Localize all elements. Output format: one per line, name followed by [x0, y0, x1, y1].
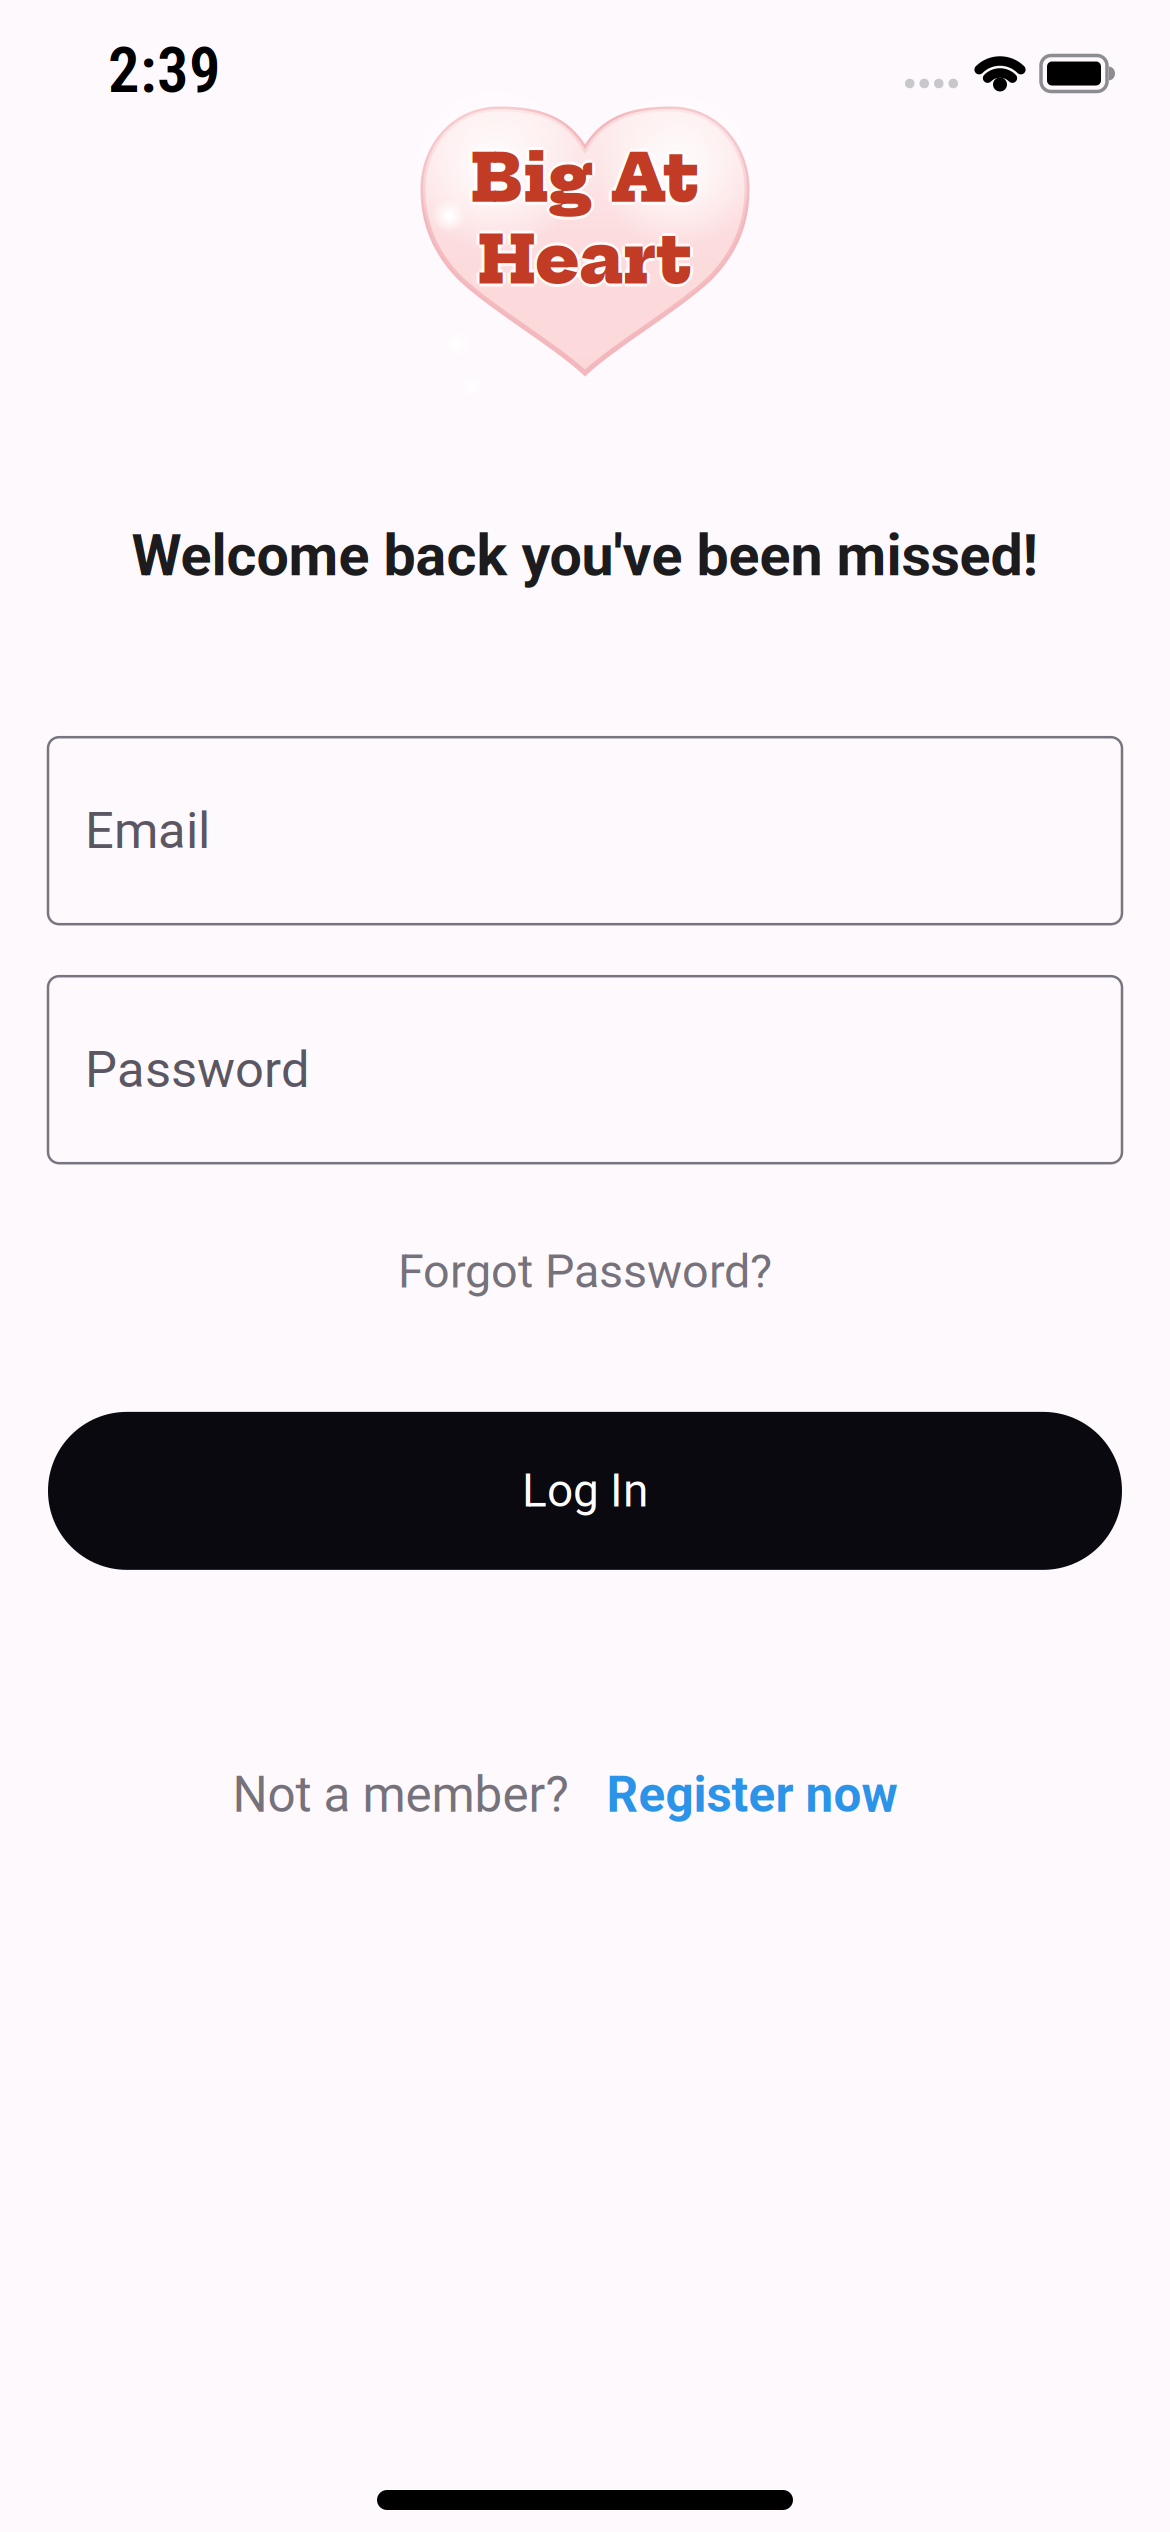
staticText: 2:39 [108, 34, 221, 107]
button[interactable]: Log In [0, 1412, 1170, 1570]
staticText: Welcome back you've been missed! [131, 522, 1038, 589]
staticText: Big At [471, 140, 699, 222]
staticText: Heart [478, 222, 692, 304]
button[interactable]: Password [0, 976, 1170, 1163]
staticText: Password [85, 1040, 310, 1099]
staticText: Not a member? [232, 1766, 568, 1824]
staticText: Heart [481, 219, 695, 301]
staticText: Heart [478, 219, 692, 301]
staticText: Big At [474, 137, 702, 219]
staticText: Big At [468, 137, 696, 219]
button[interactable]: Email [0, 737, 1170, 924]
staticText: Email [85, 801, 210, 860]
staticText: Heart [478, 216, 692, 298]
staticText: Register now [606, 1766, 897, 1824]
staticText: Heart [475, 219, 689, 301]
button[interactable]: Forgot Password? [398, 1244, 772, 1299]
staticText: Big At [471, 134, 699, 216]
staticText: Big At [471, 137, 699, 219]
staticText: Log In [522, 1464, 648, 1518]
staticText: Forgot Password? [398, 1244, 772, 1299]
button[interactable]: Register now [606, 1766, 897, 1824]
